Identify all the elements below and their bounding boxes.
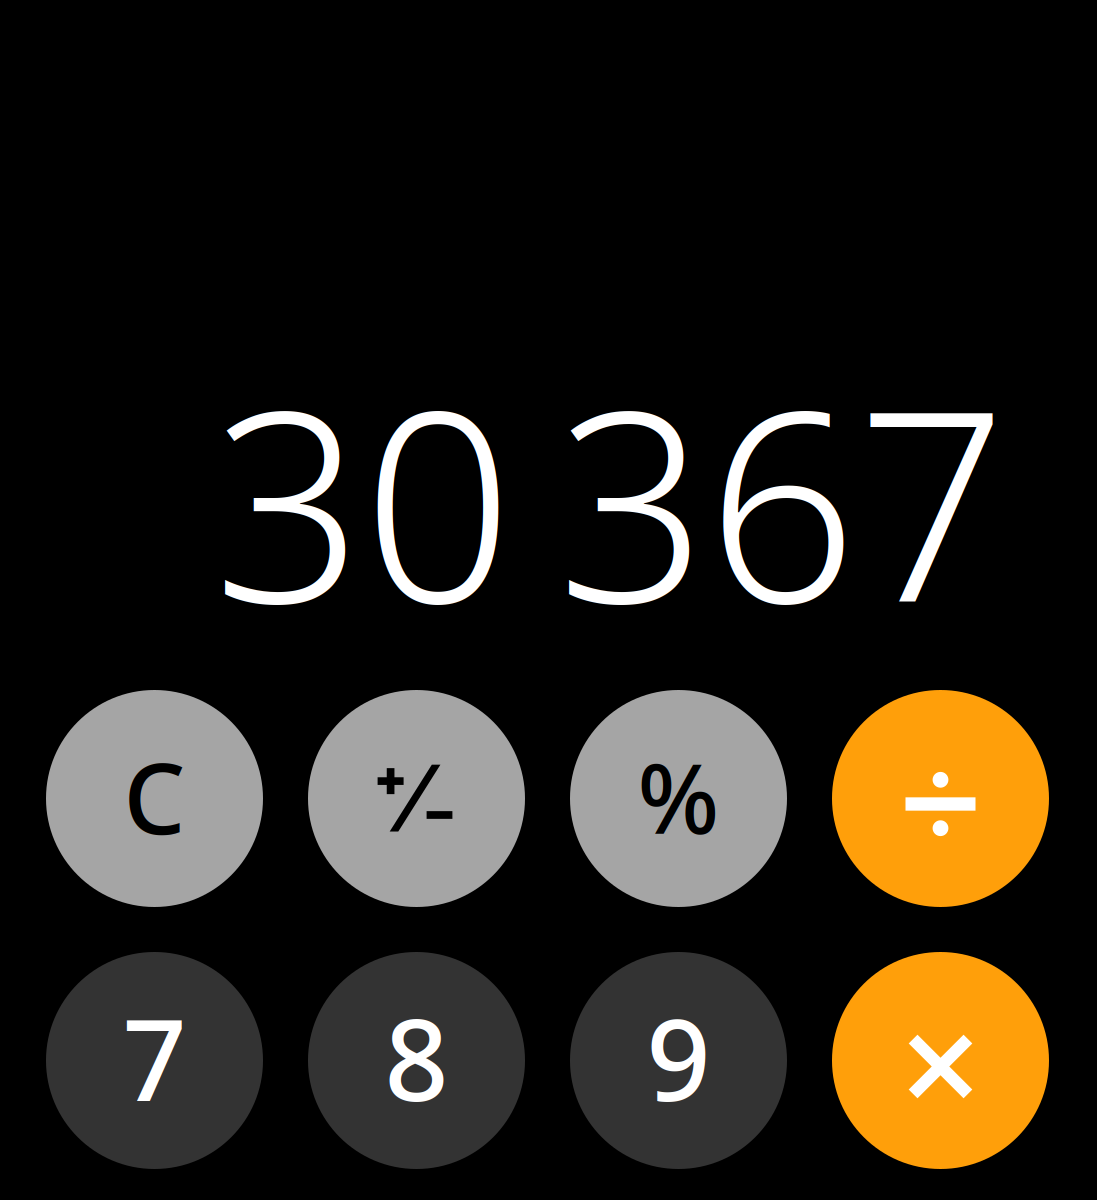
button[interactable]: Plus Minus [308, 690, 525, 907]
button[interactable]: C [46, 690, 263, 907]
button[interactable]: 7 [46, 952, 263, 1169]
button[interactable]: Multiply [832, 952, 1049, 1169]
staticText: 9 [646, 983, 710, 1132]
button[interactable]: % [570, 690, 787, 907]
staticText: 30 367 [213, 326, 1007, 674]
staticText: % [637, 733, 719, 860]
staticText: C [123, 732, 185, 861]
button[interactable]: 9 [570, 952, 787, 1169]
staticText: 8 [384, 983, 448, 1132]
staticText: 7 [122, 983, 186, 1132]
button[interactable]: 8 [308, 952, 525, 1169]
button[interactable]: Divide [832, 690, 1049, 907]
